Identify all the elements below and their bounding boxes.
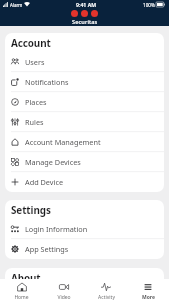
staticText: Login Information xyxy=(25,224,88,234)
staticText: Notifications xyxy=(25,77,69,87)
button[interactable]: Places xyxy=(5,92,164,112)
button[interactable]: Rules xyxy=(5,112,164,132)
staticText: Activity xyxy=(98,294,115,300)
button[interactable]: Video xyxy=(43,279,85,300)
button[interactable]: Notifications xyxy=(5,72,164,92)
staticText: Manage Devices xyxy=(25,157,81,167)
button[interactable]: Login Information xyxy=(5,219,164,239)
button[interactable]: Terms xyxy=(5,287,164,300)
button[interactable]: Add Device xyxy=(5,172,164,192)
staticText: More xyxy=(142,294,155,300)
button[interactable]: App Settings xyxy=(5,239,164,259)
button[interactable]: More xyxy=(127,279,169,300)
staticText: About xyxy=(11,271,41,284)
staticText: Add Device xyxy=(25,177,64,187)
staticText: App Settings xyxy=(25,244,69,254)
staticText: Places xyxy=(25,97,47,107)
button[interactable]: Users xyxy=(5,52,164,72)
staticText: 100% xyxy=(143,2,155,8)
staticText: Settings xyxy=(11,203,51,216)
staticText: Video xyxy=(57,294,71,300)
staticText: Users xyxy=(25,57,45,67)
staticText: Terms xyxy=(25,289,46,299)
staticText: Account Management xyxy=(25,137,101,147)
staticText: Alarm xyxy=(10,2,23,8)
staticText: 9:41 AM xyxy=(76,1,96,8)
staticText: Account xyxy=(11,36,51,49)
staticText: Rules xyxy=(25,117,44,127)
button[interactable]: Home xyxy=(0,279,43,300)
button[interactable]: Account Management xyxy=(5,132,164,152)
button[interactable]: Manage Devices xyxy=(5,152,164,172)
staticText: Home xyxy=(14,294,29,300)
staticText: Securitas xyxy=(72,18,98,26)
button[interactable]: Activity xyxy=(85,279,127,300)
